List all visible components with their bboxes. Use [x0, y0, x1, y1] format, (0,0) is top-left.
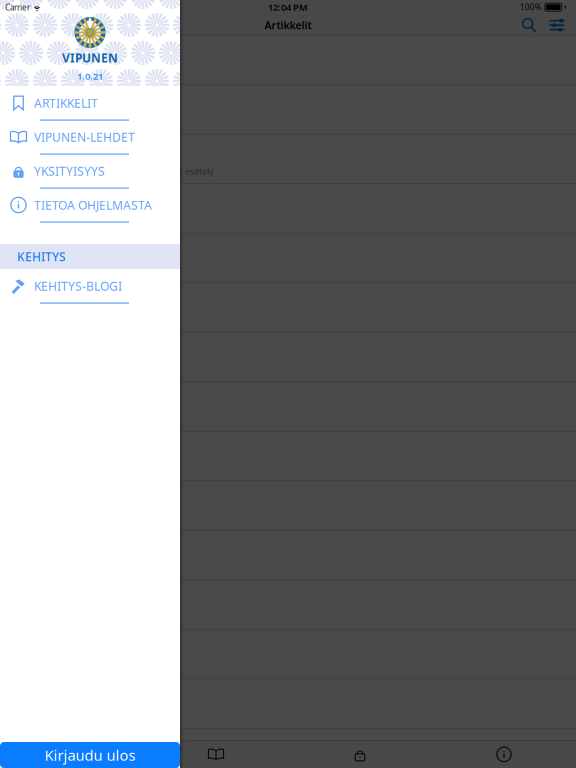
staticText: Kirjaudu ulos [44, 745, 135, 765]
staticText: 1 esittely [178, 165, 214, 177]
button[interactable]: VIPUNEN-LEHDET [0, 129, 180, 163]
staticText: Carrier [5, 2, 30, 13]
button[interactable]: YKSITYISYYS [0, 163, 180, 197]
button[interactable]: Tietoa [432, 741, 576, 768]
staticText: TIETOA OHJELMASTA [34, 197, 152, 213]
staticText: KEHITYS [17, 248, 66, 264]
button[interactable]: Search [515, 14, 543, 36]
staticText: YKSITYISYYS [34, 163, 105, 179]
button[interactable]: Filter [543, 14, 571, 36]
button[interactable]: ARTIKKELIT [0, 95, 180, 129]
button[interactable]: TIETOA OHJELMASTA [0, 197, 180, 231]
staticText: 100% [520, 2, 542, 12]
button[interactable]: Kirjaudu ulos [0, 742, 180, 768]
staticText: ARTIKKELIT [34, 95, 98, 111]
button[interactable]: KEHITYS-BLOGI [0, 278, 180, 312]
staticText: VIPUNEN-LEHDET [34, 129, 135, 145]
button[interactable]: Yksityisyys [288, 741, 432, 768]
staticText: 1.0.21 [77, 70, 103, 82]
staticText: VIPUNEN [62, 50, 118, 66]
staticText: Artikkelit [264, 18, 311, 32]
staticText: 12:04 PM [268, 1, 308, 13]
staticText: KEHITYS-BLOGI [34, 278, 122, 294]
button[interactable]: Lehdet [144, 741, 288, 768]
